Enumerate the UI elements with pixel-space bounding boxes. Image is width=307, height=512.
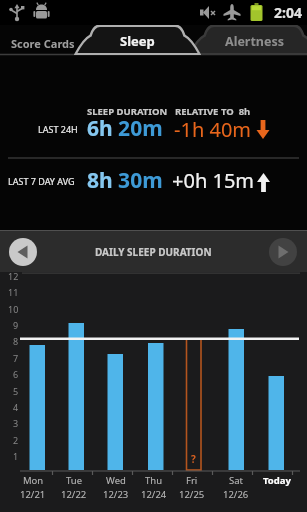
staticText: 7 <box>13 352 19 364</box>
staticText: 12 <box>8 270 19 282</box>
staticText: RELATIVE TO 8h <box>175 105 251 118</box>
staticText: 4 <box>13 401 19 413</box>
staticText: SLEEP DURATION <box>87 105 168 118</box>
staticText: 8h 30m <box>87 166 163 193</box>
button[interactable]: Sleep <box>74 25 201 55</box>
staticText: LAST 24H <box>38 123 78 135</box>
staticText: DAILY SLEEP DURATION <box>95 245 212 259</box>
staticText: 12/21 <box>20 488 46 501</box>
staticText: Mon <box>23 474 44 487</box>
staticText: ? <box>191 452 196 466</box>
button[interactable]: Alertness <box>188 25 307 55</box>
staticText: Sat <box>229 474 243 487</box>
staticText: Fri <box>186 474 198 487</box>
button[interactable]: Score Cards <box>0 25 74 55</box>
staticText: Today <box>263 474 291 487</box>
staticText: 2 <box>13 434 19 446</box>
staticText: -1h 40m <box>174 116 252 142</box>
staticText: 12/26 <box>223 488 249 501</box>
staticText: 3 <box>13 417 19 429</box>
staticText: Wed <box>106 474 126 487</box>
staticText: 6h 20m <box>87 114 163 141</box>
staticText: 2:04 <box>274 3 302 22</box>
staticText: Alertness <box>225 33 284 50</box>
staticText: Score Cards <box>11 36 75 51</box>
staticText: 12/23 <box>103 488 129 501</box>
staticText: 12/25 <box>179 488 205 501</box>
staticText: 11 <box>8 286 19 298</box>
button[interactable] <box>269 238 297 266</box>
staticText: 6 <box>13 368 19 380</box>
staticText: 1 <box>13 450 19 462</box>
button[interactable] <box>9 238 37 266</box>
staticText: 12/22 <box>61 488 87 501</box>
staticText: +0h 15m <box>172 167 255 193</box>
staticText: Thu <box>145 474 163 487</box>
staticText: 10 <box>8 303 19 315</box>
staticText: 9 <box>13 319 19 331</box>
staticText: 8 <box>13 335 19 347</box>
staticText: 5 <box>13 385 19 397</box>
staticText: LAST 7 DAY AVG <box>8 175 75 187</box>
staticText: Sleep <box>120 32 155 50</box>
staticText: 12/24 <box>141 488 167 501</box>
staticText: Tue <box>66 474 83 487</box>
